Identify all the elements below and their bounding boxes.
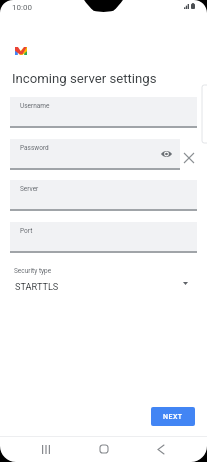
staticText: Password: [20, 144, 49, 152]
staticText: Incoming server settings: [12, 71, 157, 86]
staticText: Port: [20, 227, 33, 235]
button[interactable]: Recent apps: [34, 440, 58, 458]
button[interactable]: Password: [10, 139, 180, 168]
button[interactable]: Clear: [183, 152, 195, 164]
button[interactable]: Server: [10, 180, 197, 209]
button[interactable]: Security type: [0, 261, 207, 295]
staticText: 10:00: [12, 3, 32, 12]
button[interactable]: Back: [149, 440, 173, 458]
staticText: Security type: [14, 267, 52, 275]
button[interactable]: Port: [10, 222, 197, 251]
button[interactable]: NEXT: [151, 407, 195, 426]
staticText: Server: [20, 185, 39, 193]
staticText: NEXT: [163, 413, 183, 421]
button[interactable]: Show password: [160, 147, 173, 160]
staticText: Username: [20, 102, 50, 110]
button[interactable]: Username: [10, 97, 197, 126]
staticText: STARTTLS: [15, 281, 59, 292]
button[interactable]: Home: [92, 440, 116, 458]
